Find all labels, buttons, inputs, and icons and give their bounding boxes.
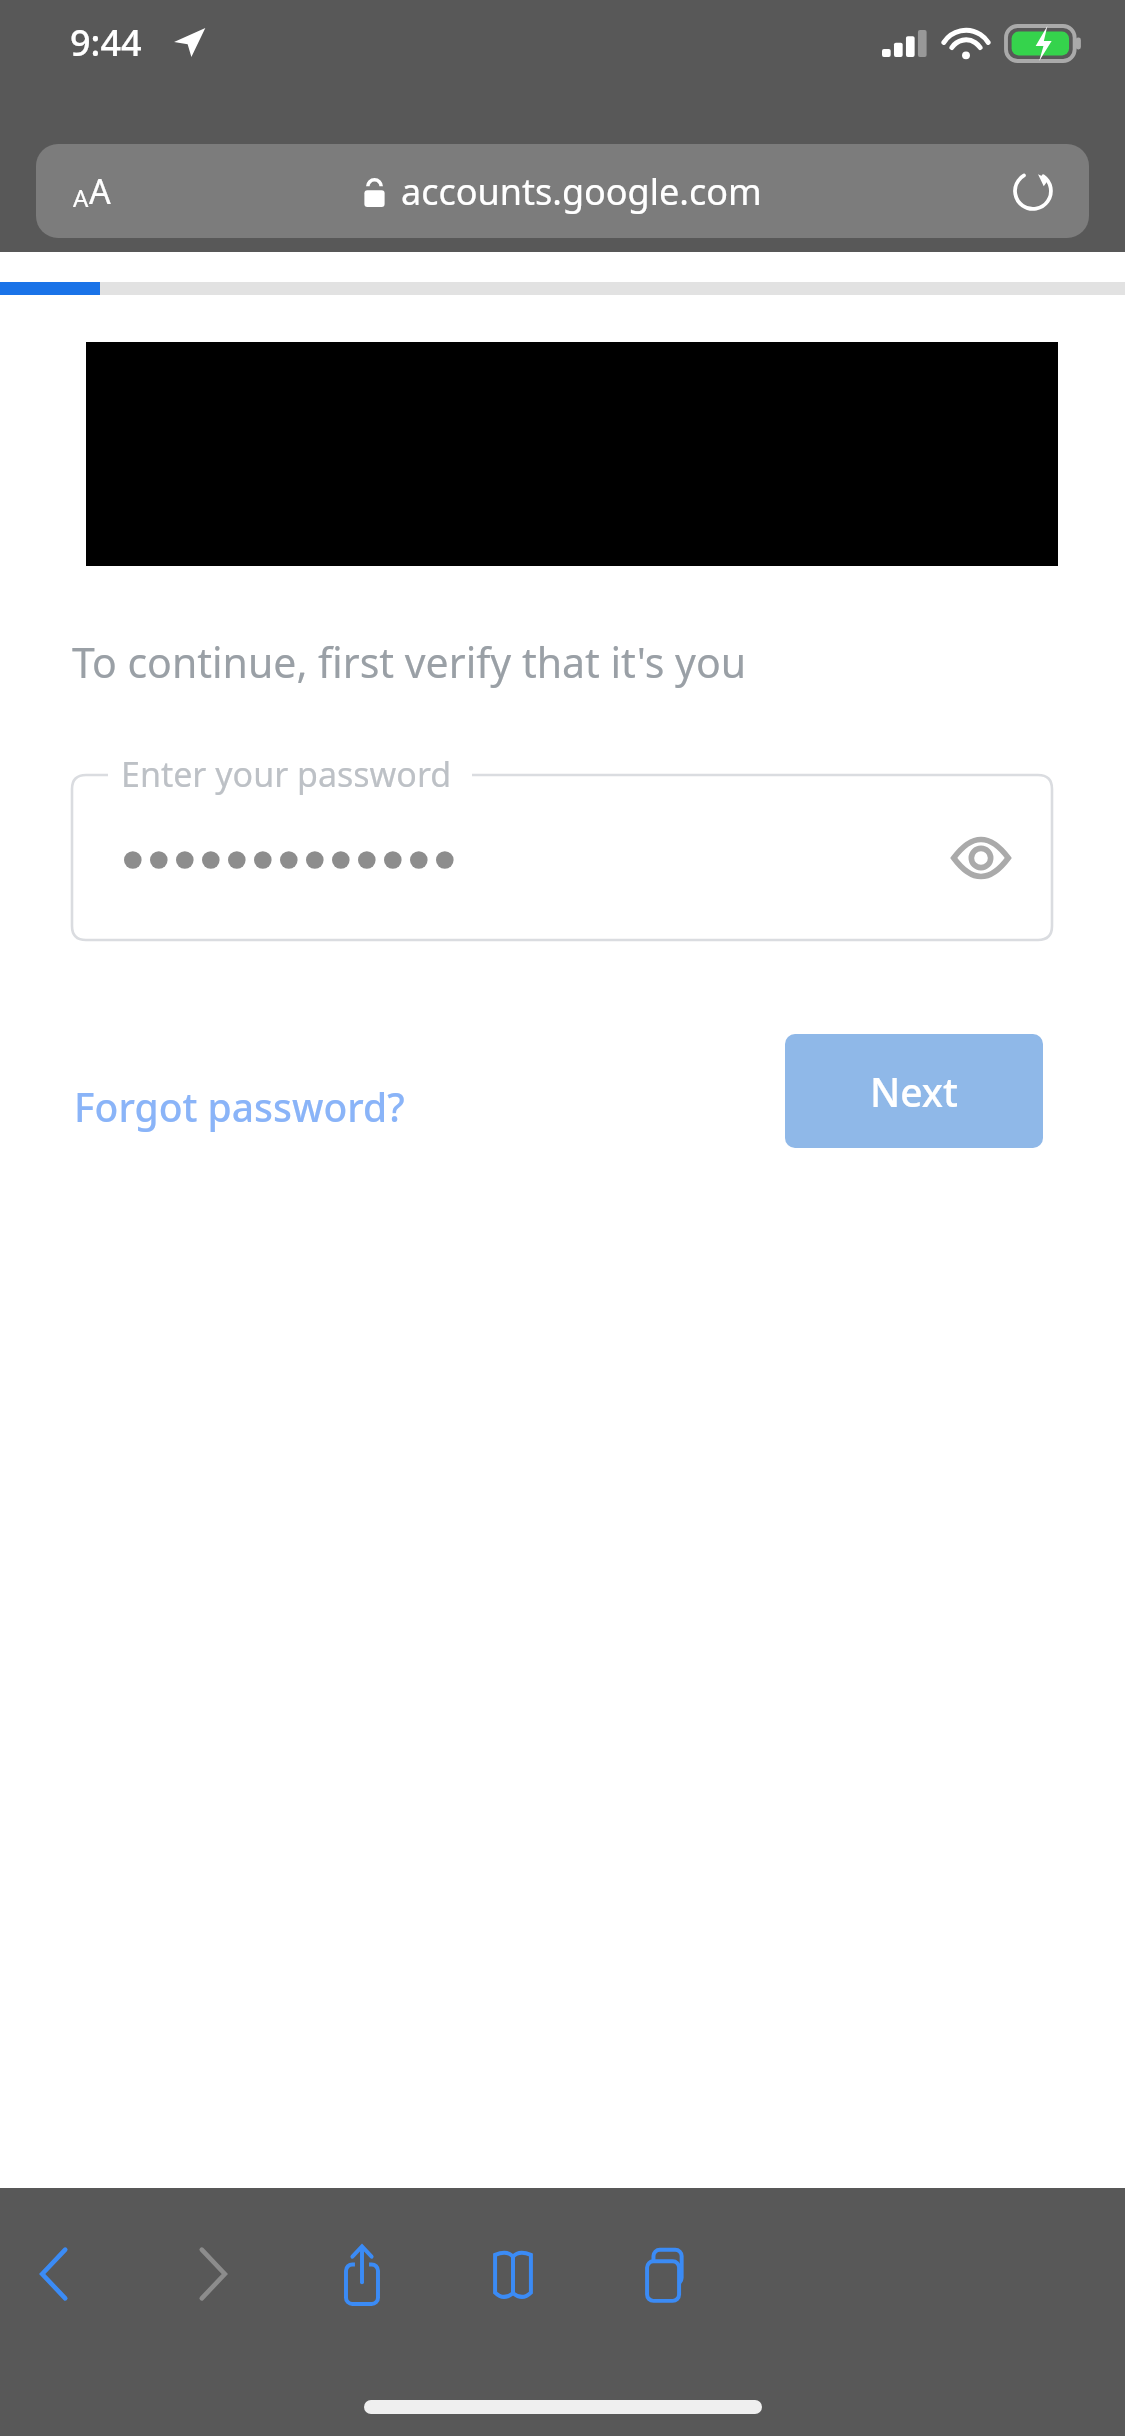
button[interactable]: Enter your password [72, 775, 1052, 940]
button[interactable]: Reload page [977, 144, 1089, 238]
button[interactable]: Text size options [36, 144, 148, 238]
staticText: accounts.google.com [401, 167, 762, 216]
button[interactable]: Share [287, 2196, 437, 2351]
button[interactable]: Text size options [36, 144, 1089, 238]
button[interactable]: Next [785, 1034, 1043, 1148]
staticText: Enter your password [121, 751, 452, 797]
staticText: To continue, first verify that it's you [72, 634, 747, 690]
button[interactable]: Show password [944, 821, 1018, 895]
button[interactable]: Forgot password? [74, 1080, 405, 1133]
button[interactable]: Forward [137, 2196, 287, 2351]
staticText: A [73, 181, 89, 214]
button[interactable]: Bookmarks [438, 2196, 588, 2351]
staticText: A [89, 168, 111, 214]
button[interactable]: Back [0, 2196, 130, 2351]
button[interactable]: Tabs [590, 2196, 740, 2351]
staticText: Next [870, 1065, 958, 1118]
staticText: 9:44 [70, 18, 142, 67]
